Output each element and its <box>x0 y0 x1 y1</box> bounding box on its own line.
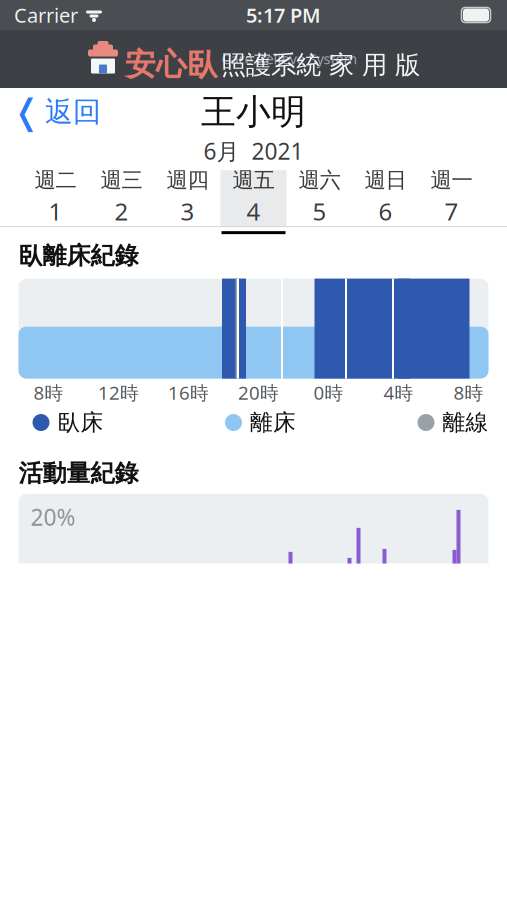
button[interactable]: 週四 <box>154 170 220 226</box>
staticText: 2 <box>114 195 128 227</box>
staticText: 返回 <box>45 95 101 129</box>
staticText: 8時 <box>33 380 63 405</box>
staticText: 週一 <box>430 167 472 193</box>
staticText: ❬ <box>12 92 41 132</box>
button[interactable]: 週三 <box>88 170 154 226</box>
staticText: 1 <box>48 195 62 227</box>
staticText: 7 <box>444 195 458 227</box>
staticText: 6月 2021 <box>203 136 303 166</box>
button[interactable]: 週六 <box>286 170 352 226</box>
button[interactable]: 週五 <box>220 170 286 226</box>
staticText: 離床 <box>250 409 296 436</box>
staticText: 5 <box>312 195 326 227</box>
staticText: 週五 <box>232 167 274 193</box>
button[interactable]: 週日 <box>352 170 418 226</box>
staticText: 週二 <box>34 167 76 193</box>
staticText: 臥床 <box>57 409 103 436</box>
staticText: 臥離床紀錄 <box>18 241 138 271</box>
button[interactable]: ❬ <box>0 90 113 134</box>
button[interactable]: 週一 <box>418 170 484 226</box>
staticText: 4時 <box>383 380 413 405</box>
staticText: 週四 <box>166 167 208 193</box>
staticText: 0時 <box>313 380 343 405</box>
staticText: 安心臥 <box>125 46 218 83</box>
staticText: 20% <box>30 502 75 532</box>
staticText: 12時 <box>98 380 139 405</box>
staticText: 3 <box>180 195 194 227</box>
staticText: 5:17 PM <box>246 2 321 28</box>
staticText: 離線 <box>442 409 488 436</box>
staticText: 4 <box>246 195 260 227</box>
staticText: 活動量紀錄 <box>18 458 138 488</box>
staticText: 6 <box>378 195 392 227</box>
staticText: 王小明 <box>201 91 306 133</box>
staticText: 週日 <box>364 167 406 193</box>
staticText: 週三 <box>100 167 142 193</box>
staticText: Care Relieve System <box>221 49 357 68</box>
staticText: 週六 <box>298 167 340 193</box>
button[interactable]: 週二 <box>22 170 88 226</box>
staticText: Carrier <box>14 2 78 28</box>
staticText: 8時 <box>453 380 483 405</box>
staticText: 20時 <box>238 380 279 405</box>
staticText: 16時 <box>168 380 209 405</box>
staticText: 照護系統 家 用 版 <box>221 49 420 80</box>
